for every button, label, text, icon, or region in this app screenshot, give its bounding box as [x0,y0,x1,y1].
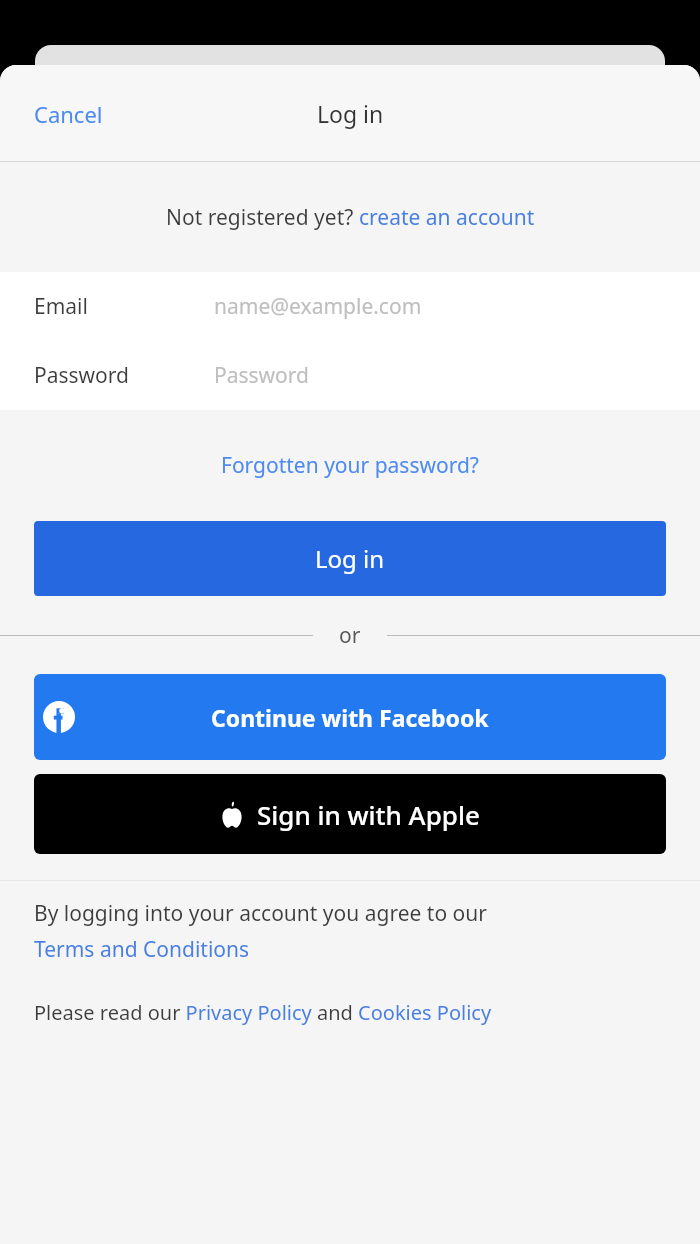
staticText: Continue with Facebook [211,702,489,733]
staticText: Email [34,292,88,321]
button[interactable]: Email [0,272,700,341]
staticText: Not registered yet? [166,203,359,232]
button[interactable]: Log in [34,521,666,596]
staticText: Please read our Privacy Policy and Cooki… [34,999,492,1026]
button[interactable]: Password [0,341,700,410]
staticText: Log in [315,542,385,575]
staticText: Password [214,361,309,390]
staticText: Terms and Conditions [34,935,250,964]
button[interactable]: Continue with Facebook [34,674,666,760]
staticText: Forgotten your password? [221,451,479,480]
staticText: Sign in with Apple [257,797,480,832]
button[interactable]: Forgotten your password? [211,441,489,490]
button[interactable]: Cancel [0,87,137,141]
staticText: or [339,621,361,650]
button[interactable]: Please read our Privacy Policy and Cooki… [34,999,492,1026]
button[interactable]: Terms and Conditions [34,935,250,964]
button[interactable]: Not registered yet? [158,195,543,240]
staticText: create an account [359,203,535,232]
staticText: Password [34,361,129,390]
staticText: name@example.com [214,292,422,321]
staticText: By logging into your account you agree t… [34,899,487,928]
staticText: Log in [317,98,384,129]
button[interactable]: Sign in with Apple [34,774,666,854]
staticText: Cancel [34,99,103,129]
